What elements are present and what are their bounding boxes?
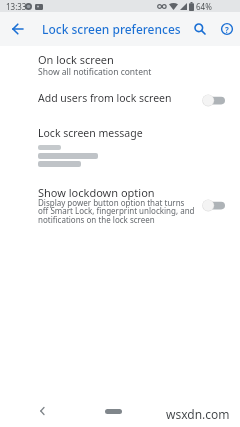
button[interactable]: On lock screen [0, 46, 240, 82]
staticText: ? [225, 24, 229, 35]
button[interactable]: Add users from lock screen [0, 82, 240, 114]
button[interactable] [33, 403, 53, 419]
staticText: Display power button option that turns o… [38, 197, 195, 225]
staticText: wsxdn.com [166, 406, 230, 422]
staticText: 13:33 [6, 1, 27, 12]
staticText: Add users from lock screen [38, 91, 172, 105]
staticText: 64% [196, 1, 212, 12]
staticText: Lock screen preferences [42, 21, 181, 37]
button[interactable] [190, 23, 210, 35]
button[interactable]: ? [218, 23, 236, 35]
staticText: Lock screen message [38, 126, 143, 140]
button[interactable] [105, 409, 122, 414]
button[interactable]: Lock screen message [0, 114, 240, 178]
button[interactable]: Show lockdown option [0, 180, 240, 230]
button[interactable] [6, 23, 30, 35]
staticText: Show all notification content [38, 66, 152, 78]
staticText: Show lockdown option [38, 185, 155, 200]
staticText: On lock screen [38, 52, 114, 67]
